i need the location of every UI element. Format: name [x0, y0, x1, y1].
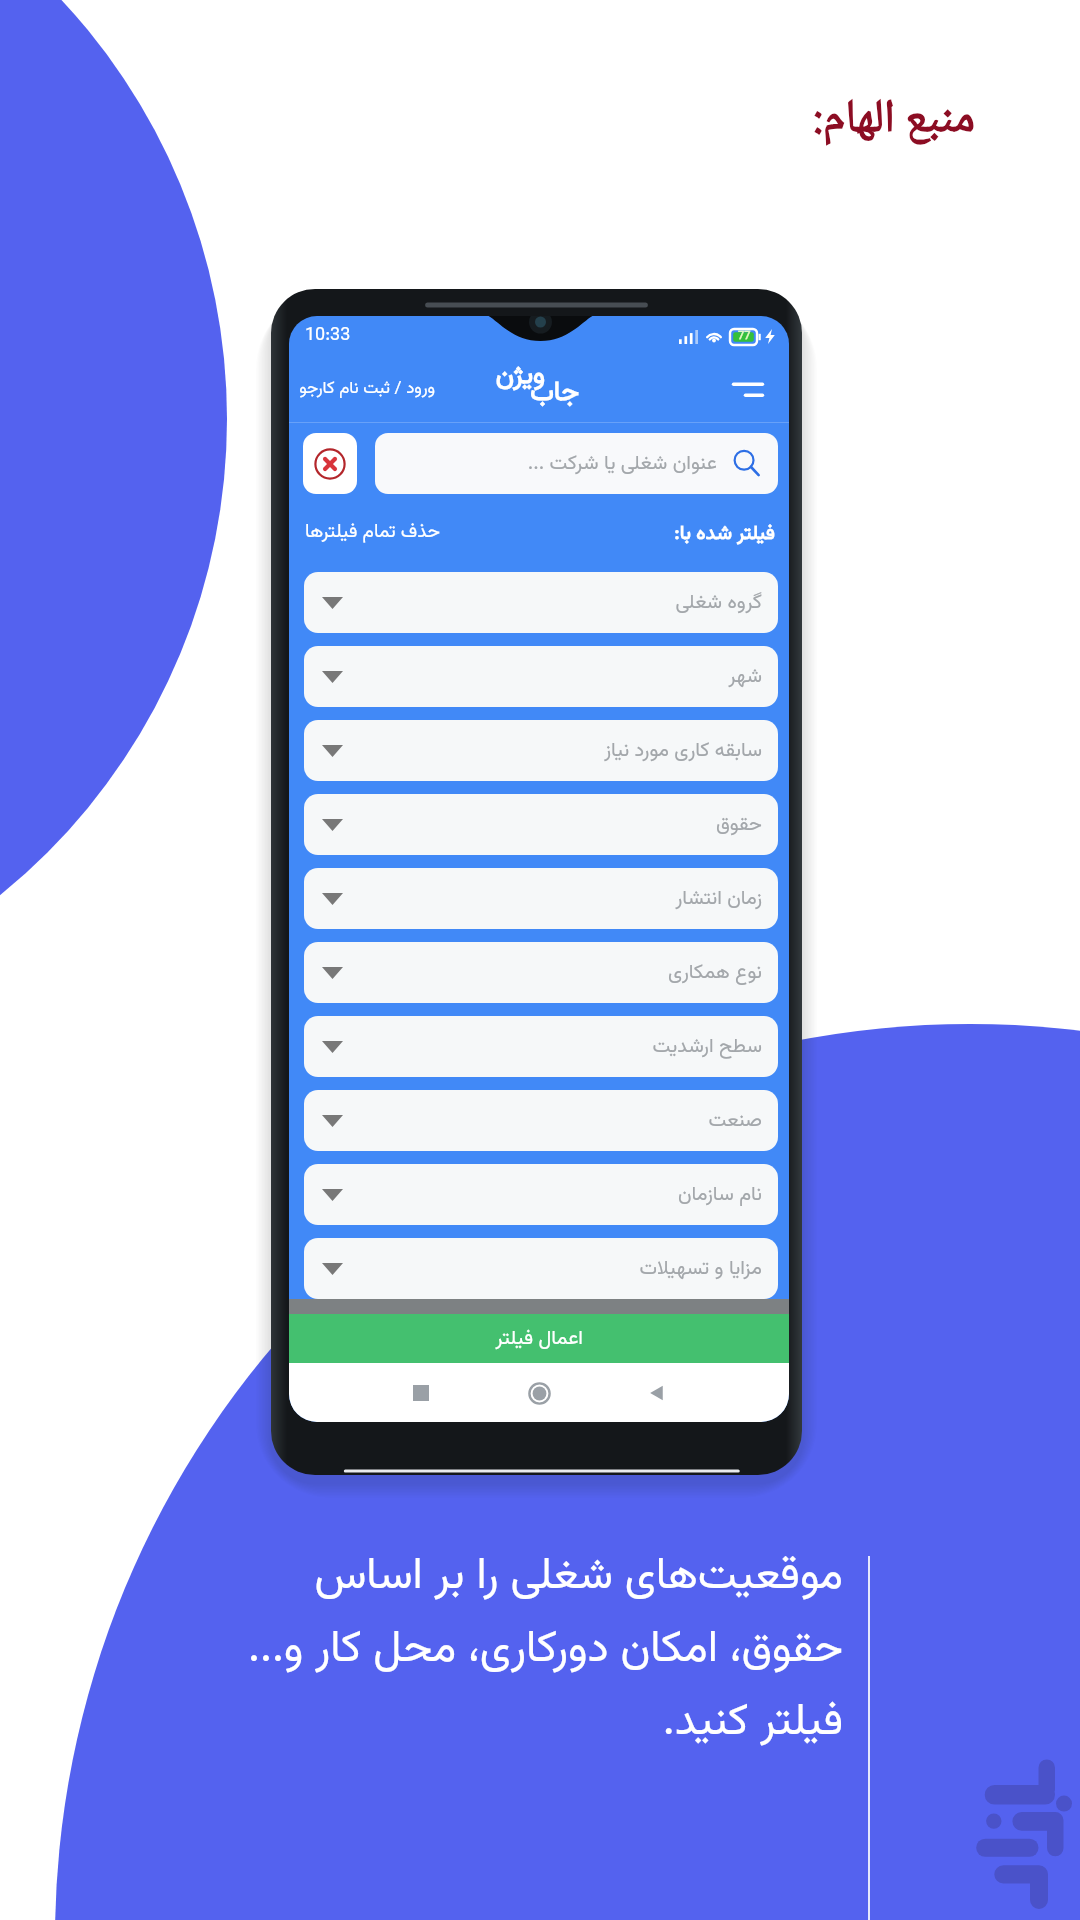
button[interactable]: زمان انتشار [304, 868, 778, 929]
button[interactable]: نوع همکاری [304, 942, 778, 1003]
staticText: 77 [738, 328, 751, 345]
button[interactable]: Recent apps [401, 1373, 441, 1413]
button[interactable]: سطح ارشدیت [304, 1016, 778, 1077]
button[interactable]: نام سازمان [304, 1164, 778, 1225]
staticText: صنعت [708, 1105, 762, 1136]
button[interactable]: شهر [304, 646, 778, 707]
staticText: سطح ارشدیت [652, 1031, 762, 1062]
staticText: ورود / ثبت نام کارجو [299, 376, 435, 403]
button[interactable]: عنوان شغلی یا شرکت ... [375, 433, 778, 494]
staticText: سابقه کاری مورد نیاز [604, 735, 762, 766]
staticText: شهر [728, 661, 762, 692]
staticText: موقعیت‌های شغلی را بر اساس حقوق، امکان د… [140, 1543, 843, 1758]
button[interactable]: Clear search [303, 433, 357, 494]
button[interactable]: اعمال فیلتر [289, 1314, 789, 1363]
staticText: حقوق [715, 809, 762, 840]
staticText: جاب [530, 372, 579, 414]
button[interactable]: ورود / ثبت نام کارجو [299, 376, 435, 403]
button[interactable]: گروه شغلی [304, 572, 778, 633]
button[interactable]: مزایا و تسهیلات [304, 1238, 778, 1299]
button[interactable]: سابقه کاری مورد نیاز [304, 720, 778, 781]
staticText: نوع همکاری [667, 957, 762, 988]
button[interactable]: Home [519, 1373, 559, 1413]
staticText: مزایا و تسهیلات [639, 1253, 762, 1284]
staticText: منبع الهام: [813, 82, 975, 160]
staticText: زمان انتشار [675, 883, 762, 914]
button[interactable]: حقوق [304, 794, 778, 855]
staticText: ویژن [495, 355, 545, 397]
staticText: فیلتر شده با: [674, 518, 775, 549]
staticText: اعمال فیلتر [495, 1323, 583, 1354]
staticText: حذف تمام فیلترها [305, 518, 440, 548]
staticText: 10:33 [305, 322, 351, 350]
staticText: عنوان شغلی یا شرکت ... [527, 448, 717, 479]
button[interactable]: صنعت [304, 1090, 778, 1151]
button[interactable]: حذف تمام فیلترها [305, 518, 440, 548]
staticText: نام سازمان [678, 1179, 762, 1210]
button[interactable]: Back [637, 1373, 677, 1413]
staticText: گروه شغلی [675, 587, 762, 618]
button[interactable]: Menu [728, 369, 768, 409]
